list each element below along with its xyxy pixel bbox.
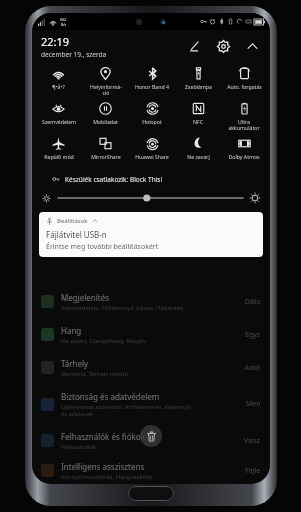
button[interactable]: ¶•å•? — [35, 65, 82, 100]
button[interactable]: Collapse — [243, 37, 261, 55]
staticText: Készülék csatlakozik: Block This! — [65, 175, 163, 184]
staticText: Felhasználók és fiókok — [61, 431, 145, 442]
button[interactable]: Beállítások — [39, 212, 263, 257]
button[interactable]: Settings — [214, 37, 232, 55]
button[interactable]: Huawei Share — [129, 135, 175, 170]
button[interactable]: Home — [128, 486, 174, 501]
button[interactable]: Tárhely — [32, 351, 270, 384]
button[interactable]: Mobiladat — [82, 100, 129, 135]
button[interactable]: Biztonság és adatvédelem — [32, 384, 270, 424]
staticText: Felhasználók — [61, 443, 97, 451]
button[interactable]: Dolby Atmos — [221, 135, 267, 170]
staticText: Mobiladat — [93, 118, 118, 125]
button[interactable]: Hang — [32, 318, 270, 351]
staticText: NFC — [193, 118, 203, 125]
staticText: Repülő mód — [44, 153, 74, 160]
staticText: B/s — [61, 22, 67, 27]
staticText: Hang — [61, 325, 82, 336]
staticText: Vissz — [244, 436, 261, 446]
button[interactable]: Hotspot — [129, 100, 175, 135]
staticText: Intelligens asszisztens — [61, 461, 145, 472]
button[interactable]: Helyinformá- ció — [82, 65, 129, 100]
staticText: Biztonság és adatvédelem — [61, 391, 160, 402]
staticText: Szemvédelem — [42, 118, 76, 125]
button[interactable]: NFC — [175, 100, 221, 135]
staticText: Adat — [245, 363, 261, 373]
staticText: Honor Band 4 — [135, 83, 169, 90]
staticText: Ujjlenyomat azonosító, Arcfelismerés, Ké… — [61, 403, 191, 418]
staticText: Fájlátvitel USB-n — [46, 229, 107, 240]
button[interactable]: Intelligens asszisztens — [32, 457, 270, 484]
button[interactable]: Edit — [185, 37, 203, 55]
staticText: Egys — [245, 330, 261, 340]
button[interactable]: Készülék csatlakozik: Block This! — [32, 172, 270, 186]
button[interactable]: Auto. forgatás — [221, 65, 267, 100]
button[interactable]: Ne zavarj — [175, 135, 221, 170]
staticText: Könnyű hozzáférés, Hangvezérlés — [61, 473, 153, 481]
staticText: Zseblámpa — [185, 83, 212, 90]
staticText: Érintse meg további beállításokért — [46, 242, 159, 252]
staticText: Men — [246, 399, 261, 409]
button[interactable]: Repülő mód — [35, 135, 82, 170]
staticText: december 19., szerda — [41, 50, 107, 59]
button[interactable]: Brightness — [58, 191, 243, 205]
staticText: Beállítások — [57, 217, 88, 225]
staticText: 562 — [60, 17, 67, 22]
staticText: Szemvédelem, Főképernyő stílusa, Háttérk… — [61, 304, 184, 312]
staticText: Dolby Atmos — [228, 153, 260, 160]
button[interactable]: MirrorShare — [82, 135, 129, 170]
button[interactable]: Szemvédelem — [35, 100, 82, 135]
staticText: Huawei Share — [135, 153, 169, 160]
button[interactable]: Ultra akkumulátor — [221, 100, 267, 135]
staticText: ¶•å•? — [52, 83, 65, 90]
staticText: Fejle — [245, 466, 261, 476]
staticText: Auto. forgatás — [227, 83, 262, 90]
button[interactable]: Delete — [140, 425, 162, 447]
staticText: Tárhely — [61, 358, 89, 369]
staticText: Helyinformá- ció — [90, 83, 122, 96]
button[interactable]: Zseblámpa — [175, 65, 221, 100]
button[interactable]: Felhasználók és fiókok — [32, 424, 270, 457]
staticText: MirrorShare — [91, 153, 121, 160]
staticText: Megjelenítés — [61, 292, 110, 303]
staticText: Dátu — [245, 297, 261, 307]
staticText: Ne zavarj — [187, 153, 210, 160]
button[interactable]: Megjelenítés — [32, 285, 270, 318]
staticText: Ne zavarj, Csengőhang, Rezgés — [61, 337, 146, 345]
staticText: Hotspot — [142, 118, 162, 125]
staticText: Memória, Tárhely tisztító — [61, 370, 129, 378]
staticText: 22:19 — [41, 34, 70, 49]
button[interactable]: Honor Band 4 — [129, 65, 175, 100]
staticText: Ultra akkumulátor — [228, 118, 260, 131]
